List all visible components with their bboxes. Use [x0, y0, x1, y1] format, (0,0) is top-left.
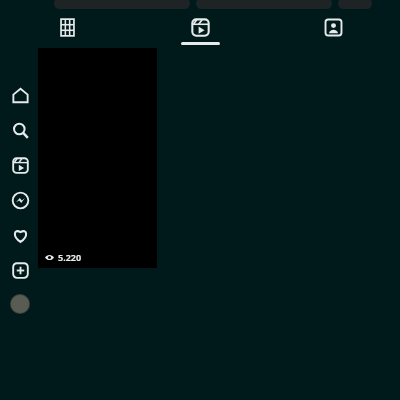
button[interactable]: Create: [9, 259, 31, 281]
button[interactable]: Reels: [9, 154, 31, 176]
button[interactable]: 5.220: [38, 48, 157, 268]
button[interactable]: Profile: [10, 294, 30, 314]
button[interactable]: Messages: [9, 189, 31, 211]
button[interactable]: Home: [9, 84, 31, 106]
button[interactable]: Reels: [134, 18, 267, 52]
button[interactable]: [338, 0, 372, 9]
button[interactable]: Search: [9, 119, 31, 141]
button[interactable]: Tagged: [267, 18, 400, 52]
button[interactable]: Grid posts: [0, 18, 134, 52]
button[interactable]: Activity: [9, 224, 31, 246]
staticText: 5.220: [58, 251, 82, 263]
